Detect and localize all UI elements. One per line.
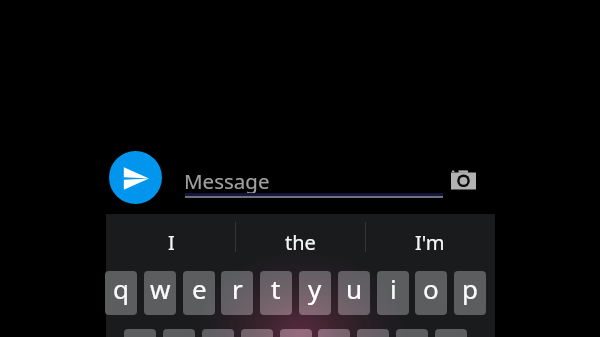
- button[interactable]: u: [338, 271, 370, 315]
- button[interactable]: k: [396, 329, 428, 337]
- button[interactable]: I: [106, 214, 236, 266]
- staticText: I: [168, 229, 175, 256]
- staticText: y: [308, 271, 322, 306]
- button[interactable]: q: [105, 271, 137, 315]
- button[interactable]: Send: [109, 151, 162, 204]
- button[interactable]: Camera: [448, 167, 479, 192]
- staticText: t: [271, 271, 281, 306]
- button[interactable]: o: [415, 271, 447, 315]
- staticText: e: [192, 271, 207, 306]
- button[interactable]: h: [318, 329, 350, 337]
- staticText: Message: [184, 167, 270, 195]
- staticText: the: [285, 229, 316, 256]
- button[interactable]: the: [235, 214, 365, 266]
- staticText: r: [232, 271, 243, 306]
- button[interactable]: i: [377, 271, 409, 315]
- button[interactable]: y: [299, 271, 331, 315]
- button[interactable]: d: [202, 329, 234, 337]
- staticText: I'm: [415, 229, 445, 256]
- button[interactable]: s: [163, 329, 195, 337]
- button[interactable]: t: [260, 271, 292, 315]
- button[interactable]: r: [221, 271, 253, 315]
- button[interactable]: l: [435, 329, 467, 337]
- button[interactable]: j: [357, 329, 389, 337]
- staticText: p: [462, 271, 478, 306]
- button[interactable]: f: [241, 329, 273, 337]
- button[interactable]: a: [124, 329, 156, 337]
- staticText: h: [326, 329, 343, 337]
- staticText: u: [346, 271, 363, 306]
- staticText: q: [113, 271, 129, 306]
- button[interactable]: e: [183, 271, 215, 315]
- button[interactable]: I'm: [365, 214, 495, 266]
- button[interactable]: g: [280, 329, 312, 337]
- staticText: o: [423, 271, 439, 306]
- button[interactable]: p: [454, 271, 486, 315]
- staticText: i: [390, 271, 397, 306]
- staticText: w: [150, 271, 171, 306]
- button[interactable]: w: [144, 271, 176, 315]
